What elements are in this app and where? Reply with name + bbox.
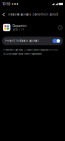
- staticText: Instalovat aplikace z externích zdrojů: [8, 13, 59, 16]
- staticText: Povolit instalace aplikací: [5, 39, 39, 42]
- staticText: 10:58: [2, 2, 10, 6]
- button[interactable]: Povolit instalace aplikací: [2, 37, 63, 45]
- staticText: verze 1.7.4: [13, 28, 25, 31]
- button[interactable]: Informace o aplikaci: [58, 25, 62, 30]
- button[interactable]: Zpět: [2, 12, 6, 17]
- staticText: že za případné škody nesete odpovědnost.: [3, 52, 43, 55]
- staticText: Povolením aplikací z tohoto zdroje souhl…: [3, 48, 58, 51]
- staticText: Dopamin: [13, 24, 27, 28]
